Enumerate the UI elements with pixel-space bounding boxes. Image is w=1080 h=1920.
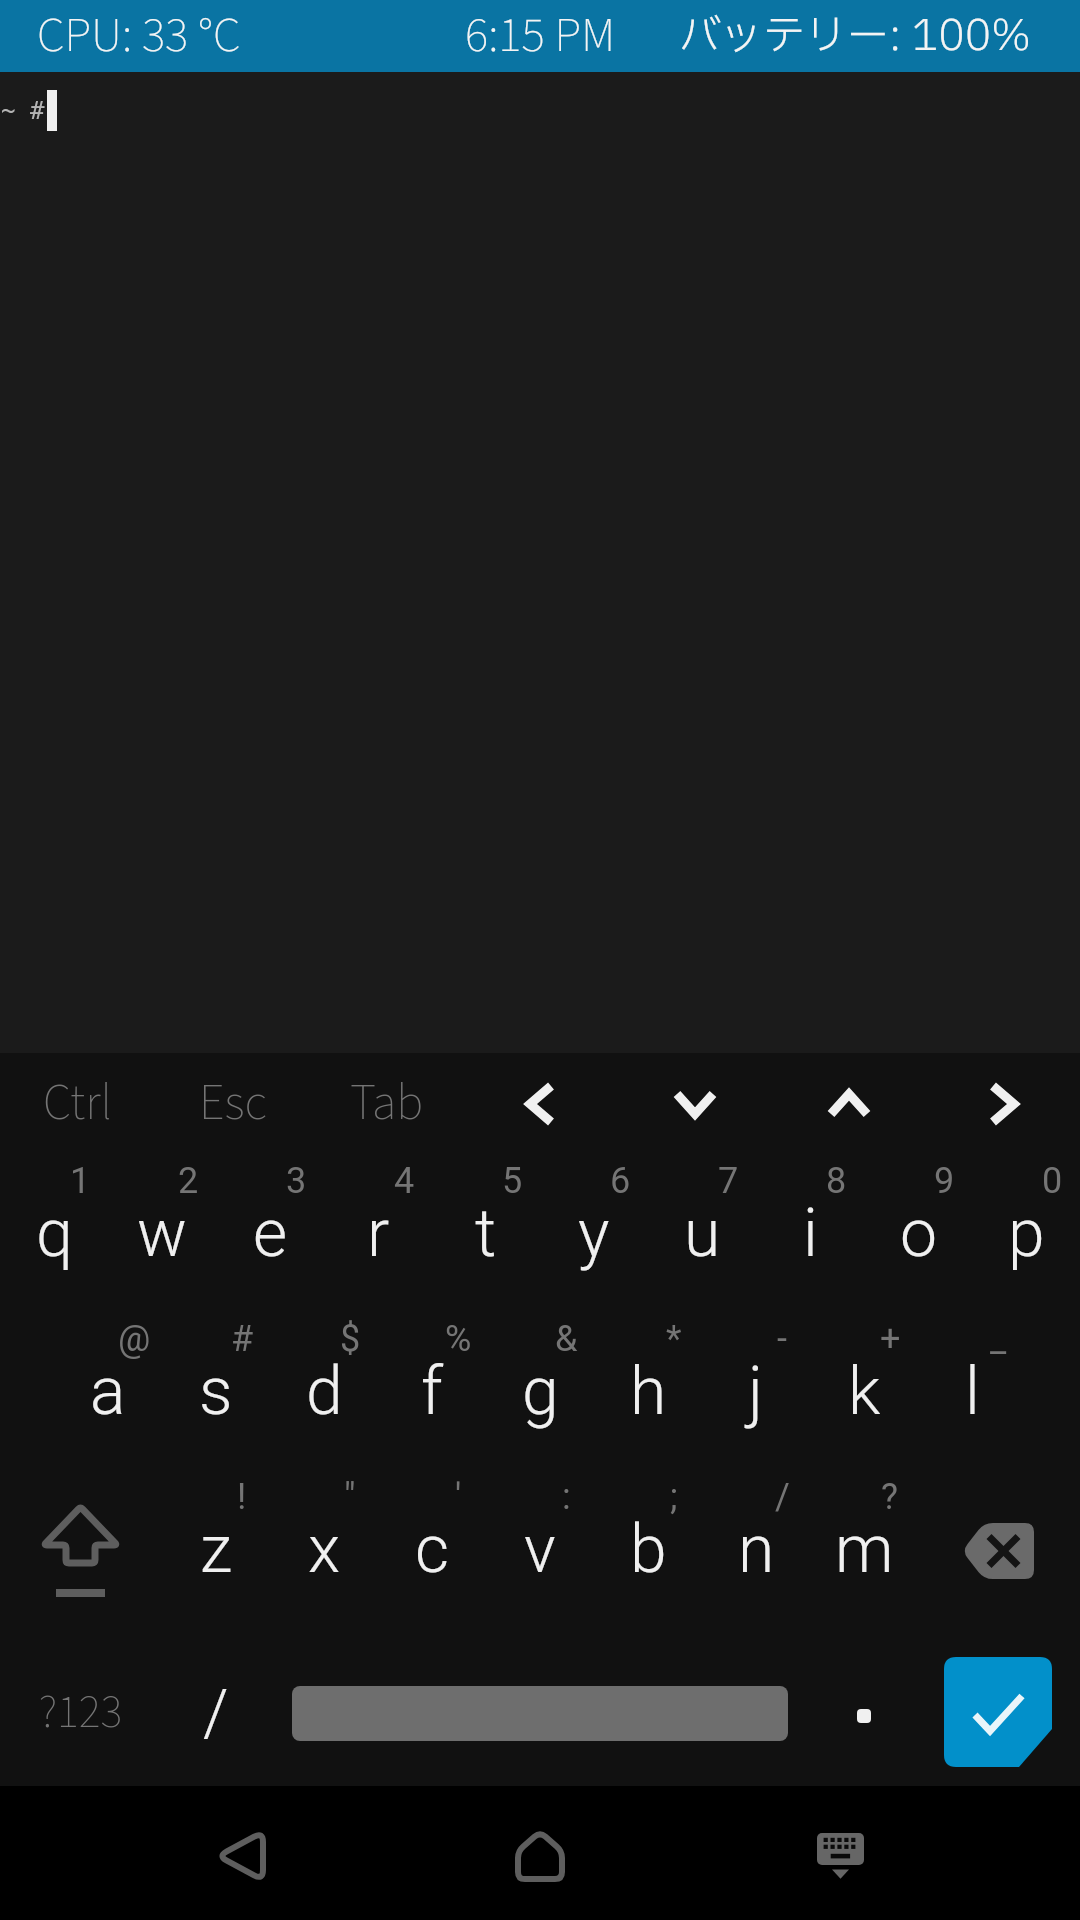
button[interactable]: ?123 [0, 1628, 162, 1786]
staticText: h [630, 1353, 667, 1430]
staticText: c [415, 1511, 450, 1588]
button[interactable] [918, 1628, 1080, 1786]
staticText: 3 [286, 1160, 307, 1202]
button[interactable] [510, 1826, 570, 1886]
button[interactable]: 4 [324, 1154, 432, 1312]
button[interactable]: 5 [432, 1154, 540, 1312]
staticText: / [203, 1676, 229, 1751]
button[interactable]: 6 [540, 1154, 648, 1312]
staticText: 5 [502, 1160, 523, 1202]
staticText: s [199, 1353, 233, 1430]
staticText: y [578, 1195, 610, 1272]
staticText: a [90, 1353, 126, 1430]
staticText: ; [670, 1476, 678, 1518]
staticText: + [880, 1318, 901, 1360]
button[interactable]: ; [594, 1470, 702, 1628]
staticText: / [775, 1476, 790, 1518]
button[interactable]: + [810, 1312, 918, 1470]
button[interactable] [618, 1053, 772, 1154]
button[interactable]: - [702, 1312, 810, 1470]
staticText: ' [455, 1476, 462, 1518]
staticText: 2 [178, 1160, 199, 1202]
staticText: - [777, 1318, 787, 1360]
staticText: d [306, 1353, 343, 1430]
staticText: f [421, 1353, 443, 1430]
button[interactable]: 8 [756, 1154, 864, 1312]
staticText: k [848, 1353, 881, 1430]
button[interactable]: Ctrl [0, 1053, 155, 1154]
staticText: b [630, 1511, 667, 1588]
staticText: 1 [70, 1160, 91, 1202]
button[interactable]: * [594, 1312, 702, 1470]
button[interactable]: 1 [0, 1154, 108, 1312]
staticText: l [965, 1353, 980, 1430]
staticText: 8 [826, 1160, 847, 1202]
staticText: 9 [934, 1160, 955, 1202]
staticText: $ [340, 1318, 361, 1360]
staticText: o [900, 1195, 937, 1272]
staticText: Tab [350, 1068, 424, 1139]
staticText: u [684, 1195, 721, 1272]
staticText: ~ # [1, 97, 45, 125]
staticText: % [445, 1318, 472, 1360]
button[interactable]: _ [918, 1312, 1026, 1470]
staticText: 4 [394, 1160, 415, 1202]
button[interactable]: ' [378, 1470, 486, 1628]
staticText: g [522, 1353, 559, 1430]
staticText: p [1008, 1195, 1045, 1272]
button[interactable]: 9 [864, 1154, 972, 1312]
button[interactable] [772, 1053, 926, 1154]
button[interactable] [810, 1824, 870, 1884]
button[interactable]: Tab [310, 1053, 464, 1154]
staticText: " [344, 1476, 356, 1518]
staticText: CPU: 33 °C [37, 1, 241, 71]
staticText: m [835, 1511, 894, 1588]
staticText: ? [881, 1476, 899, 1518]
staticText: 7 [718, 1160, 739, 1202]
button[interactable] [210, 1826, 270, 1886]
staticText: e [253, 1195, 288, 1272]
button[interactable] [926, 1053, 1080, 1154]
button[interactable]: / [162, 1628, 270, 1786]
staticText: i [803, 1195, 818, 1272]
staticText: w [137, 1195, 187, 1272]
button[interactable]: ! [162, 1470, 270, 1628]
staticText: 0 [1042, 1160, 1063, 1202]
button[interactable]: # [162, 1312, 270, 1470]
button[interactable]: & [486, 1312, 594, 1470]
staticText: n [738, 1511, 775, 1588]
button[interactable] [918, 1470, 1080, 1628]
staticText: @ [118, 1318, 151, 1360]
staticText: Esc [199, 1068, 267, 1139]
button[interactable]: @ [54, 1312, 162, 1470]
staticText: バッテリー: 100% [679, 5, 1032, 68]
staticText: j [748, 1353, 764, 1430]
staticText: q [36, 1195, 73, 1272]
staticText: # [231, 1318, 254, 1360]
button[interactable] [270, 1628, 810, 1786]
button[interactable]: / [702, 1470, 810, 1628]
button[interactable]: 2 [108, 1154, 216, 1312]
button[interactable]: 3 [216, 1154, 324, 1312]
button[interactable]: 0 [972, 1154, 1080, 1312]
button[interactable]: 7 [648, 1154, 756, 1312]
staticText: x [308, 1511, 341, 1588]
staticText: & [555, 1318, 578, 1360]
button[interactable]: $ [270, 1312, 378, 1470]
staticText: t [475, 1195, 497, 1272]
staticText: _ [990, 1318, 1007, 1360]
button[interactable]: ? [810, 1470, 918, 1628]
staticText: : [562, 1476, 571, 1518]
button[interactable] [810, 1628, 918, 1786]
staticText: ! [237, 1476, 247, 1518]
staticText: z [200, 1511, 233, 1588]
button[interactable]: % [378, 1312, 486, 1470]
button[interactable] [464, 1053, 618, 1154]
button[interactable]: : [486, 1470, 594, 1628]
button[interactable] [0, 1470, 162, 1628]
staticText: 6:15 PM [465, 1, 616, 71]
button[interactable]: Esc [155, 1053, 310, 1154]
staticText: * [666, 1318, 682, 1360]
button[interactable]: " [270, 1470, 378, 1628]
staticText: Ctrl [43, 1068, 112, 1139]
